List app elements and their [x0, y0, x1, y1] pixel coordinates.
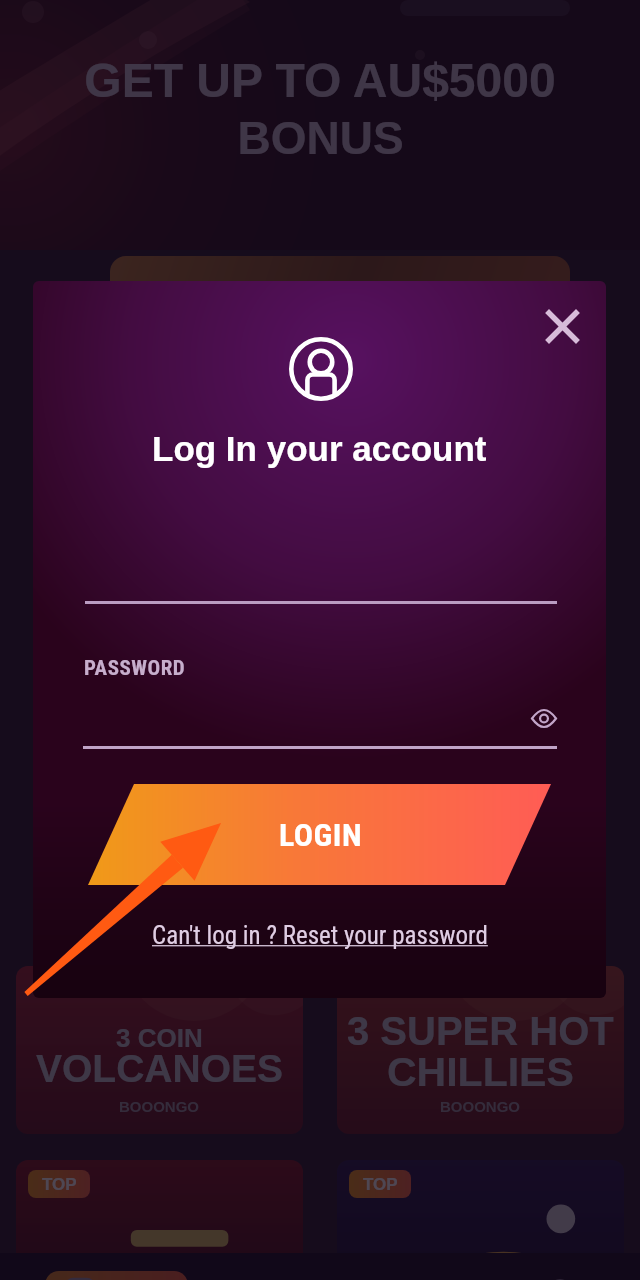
staticText: BOOONGO [440, 1098, 521, 1115]
staticText: TOP [363, 1175, 398, 1194]
staticText: Can't log in ? Reset your password [152, 921, 488, 950]
staticText: BONUS [237, 112, 404, 163]
staticText: 3 COIN [116, 1023, 203, 1052]
button[interactable]: LOGIN [88, 784, 551, 885]
button[interactable]: TOP [337, 1160, 624, 1280]
button[interactable]: TOP [16, 1160, 303, 1280]
staticText: PASSWORD [84, 656, 186, 681]
button[interactable]: Casino [45, 1271, 188, 1280]
button[interactable]: Games [160, 1260, 320, 1280]
staticText: BOOONGO [119, 1098, 200, 1115]
staticText: Log In your account [152, 429, 487, 468]
staticText: CHILLIES [387, 1049, 574, 1095]
button[interactable]: Show password [514, 688, 574, 748]
staticText: VOLCANOES [36, 1047, 284, 1091]
button[interactable]: 3 SUPER HOT [337, 966, 624, 1134]
button[interactable]: Home [0, 1260, 160, 1280]
button[interactable]: Close [528, 292, 596, 360]
staticText: LOGIN [279, 816, 363, 854]
staticText: TOP [42, 1175, 77, 1194]
button[interactable]: Can't log in ? Reset your password [152, 921, 488, 950]
staticText: 3 SUPER HOT [347, 1009, 614, 1054]
button[interactable]: 3 COIN [16, 966, 303, 1134]
staticText: GET UP TO AU$5000 [84, 54, 556, 108]
